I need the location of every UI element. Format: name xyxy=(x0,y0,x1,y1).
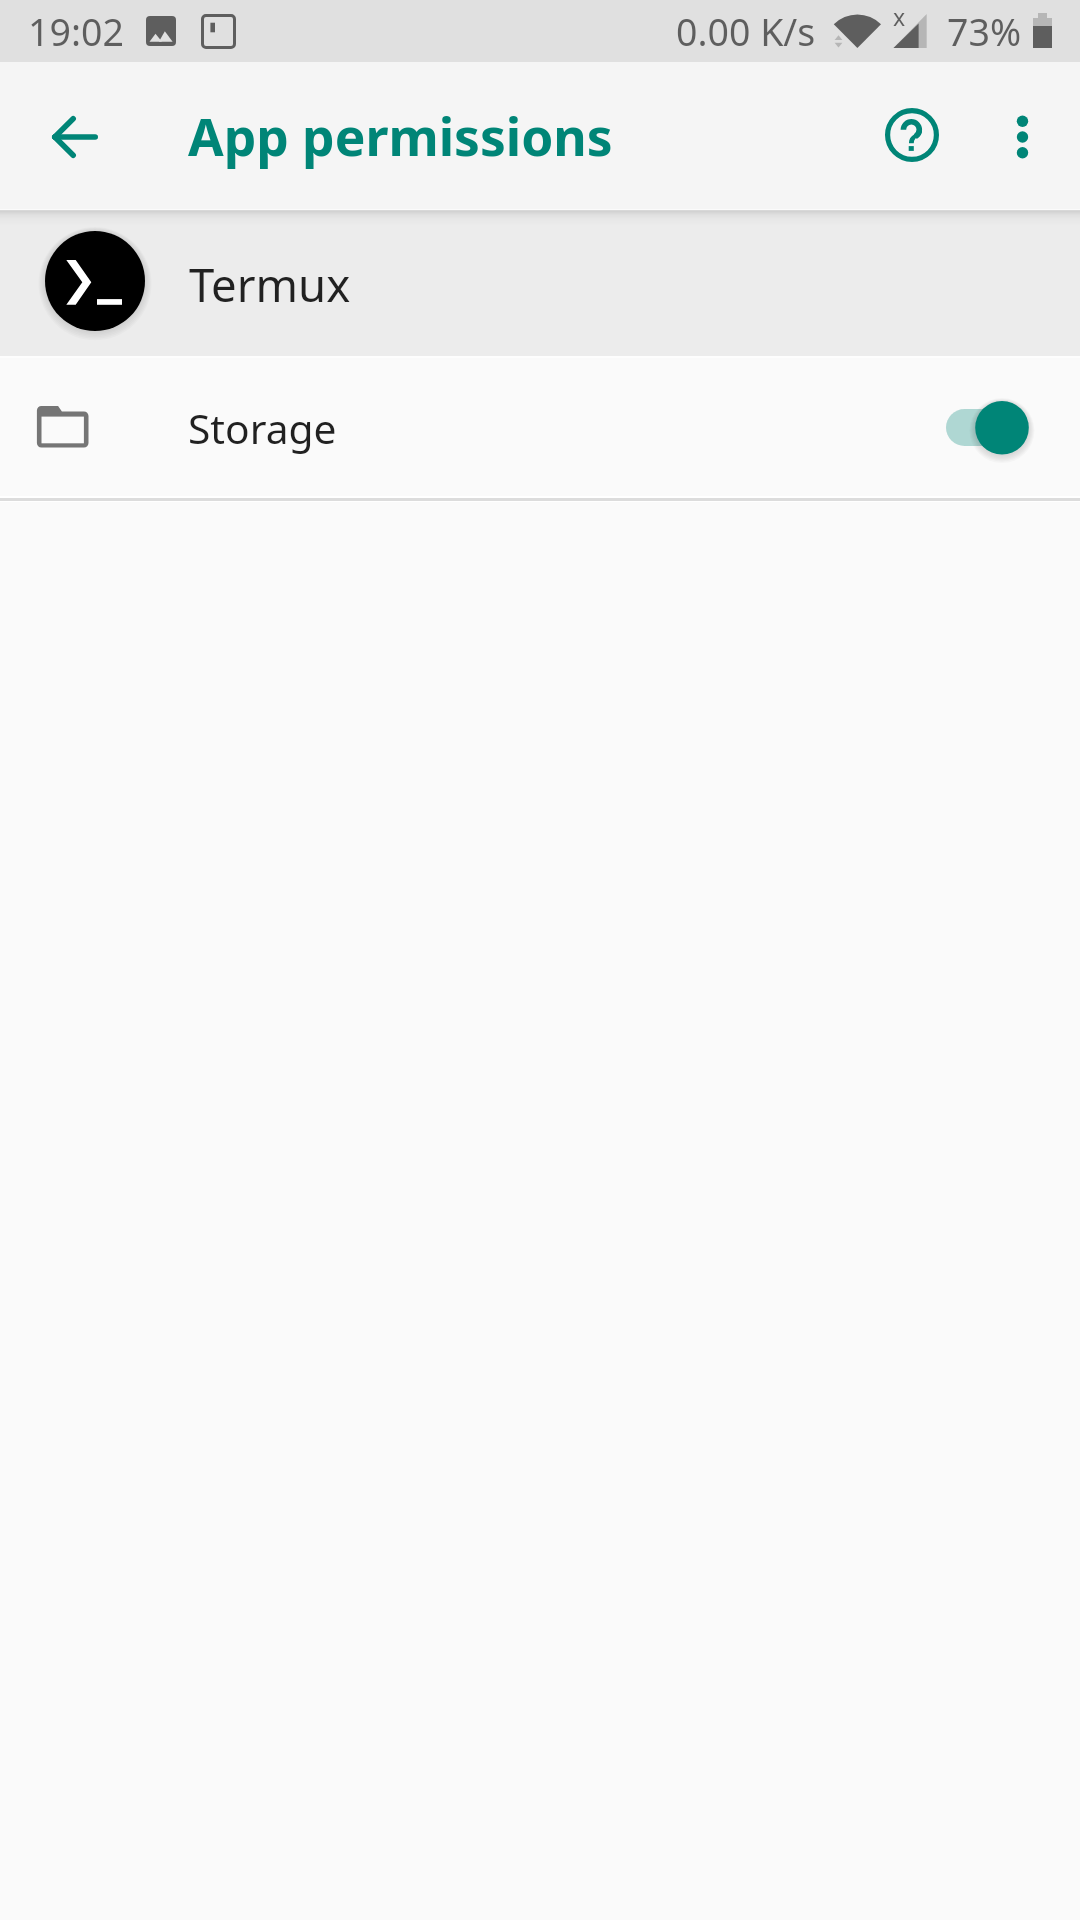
staticText: 19:02 xyxy=(28,6,124,57)
button[interactable]: Storage permission, on xyxy=(939,373,1049,483)
button[interactable]: Termux xyxy=(0,210,1080,356)
button[interactable]: Help xyxy=(864,87,960,183)
staticText: Storage xyxy=(188,400,337,455)
staticText: App permissions xyxy=(188,101,613,171)
staticText: 0.00 K/s xyxy=(676,6,816,57)
button[interactable]: Navigate up xyxy=(27,89,123,185)
staticText: x xyxy=(893,1,906,32)
staticText: Termux xyxy=(189,253,351,315)
button[interactable]: More options xyxy=(974,89,1070,185)
button[interactable]: Storage xyxy=(0,356,1080,499)
staticText: 73% xyxy=(947,6,1022,57)
